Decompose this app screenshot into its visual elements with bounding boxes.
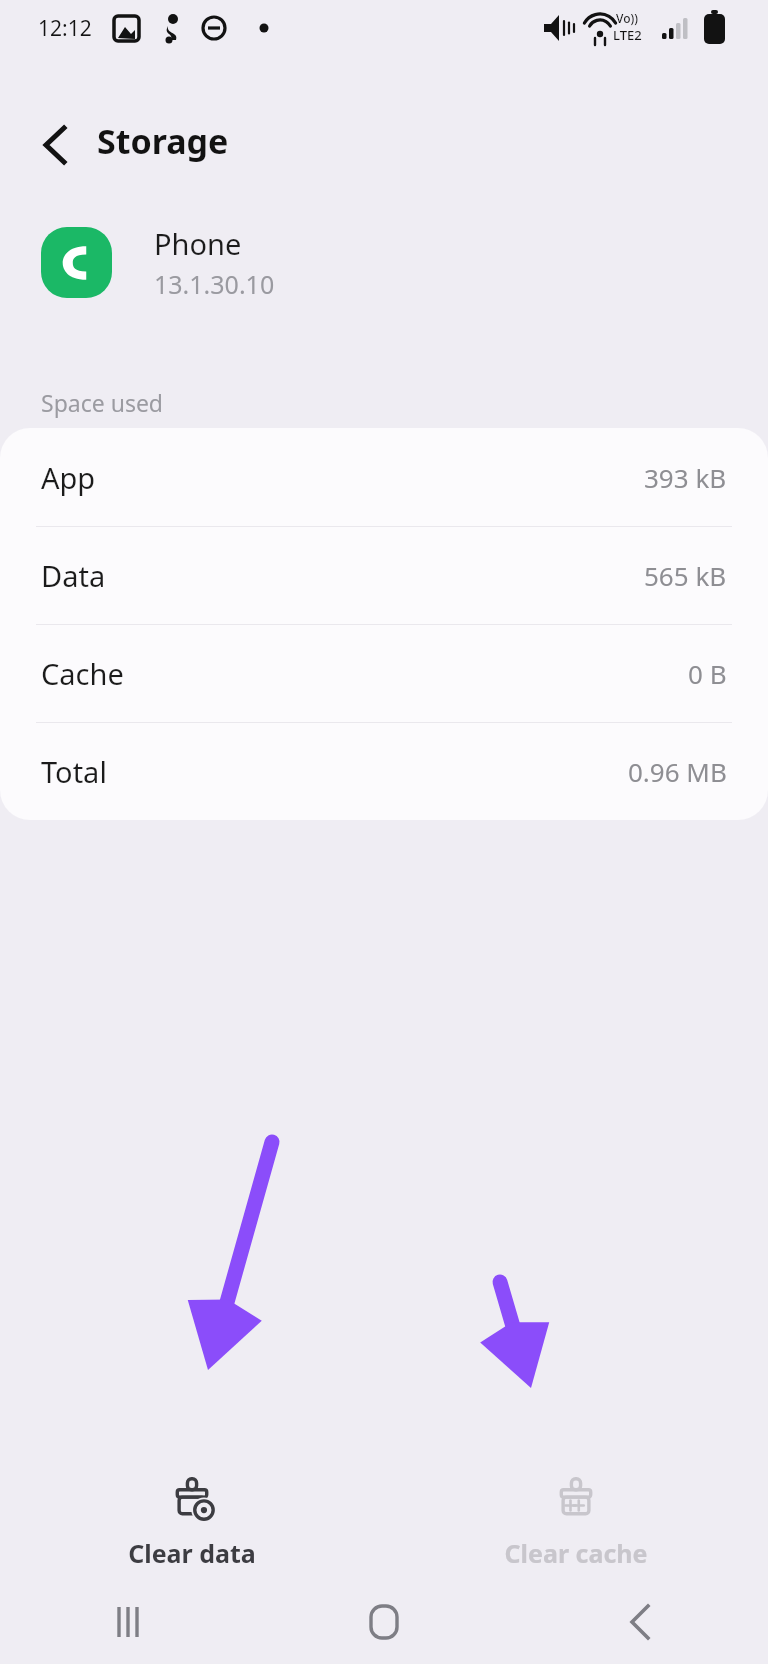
staticText: Phone (154, 224, 242, 263)
staticText: 565 kB (644, 558, 727, 593)
button[interactable]: App (0, 429, 768, 526)
button[interactable]: Back (512, 1580, 768, 1664)
staticText: 0 B (688, 656, 727, 691)
staticText: LTE2 (613, 26, 642, 44)
button[interactable]: Home (256, 1580, 512, 1664)
button[interactable]: Clear data (0, 1462, 384, 1580)
button[interactable]: Data (0, 527, 768, 624)
staticText: Total (41, 752, 107, 791)
staticText: 0.96 MB (628, 754, 727, 789)
staticText: Storage (97, 118, 229, 164)
button[interactable]: Back (24, 114, 86, 176)
staticText: Clear cache (504, 1536, 648, 1570)
staticText: 13.1.30.10 (154, 267, 275, 301)
button[interactable]: Clear cache (384, 1462, 768, 1580)
button[interactable]: Recent apps (0, 1580, 256, 1664)
staticText: 12:12 (38, 14, 92, 43)
staticText: Vo)) (616, 10, 638, 26)
staticText: App (41, 458, 96, 497)
staticText: Cache (41, 654, 124, 693)
staticText: Clear data (128, 1536, 256, 1570)
button[interactable]: Cache (0, 625, 768, 722)
staticText: 393 kB (644, 460, 727, 495)
staticText: Space used (41, 387, 164, 418)
staticText: Data (41, 556, 106, 595)
button[interactable]: Total (0, 723, 768, 820)
